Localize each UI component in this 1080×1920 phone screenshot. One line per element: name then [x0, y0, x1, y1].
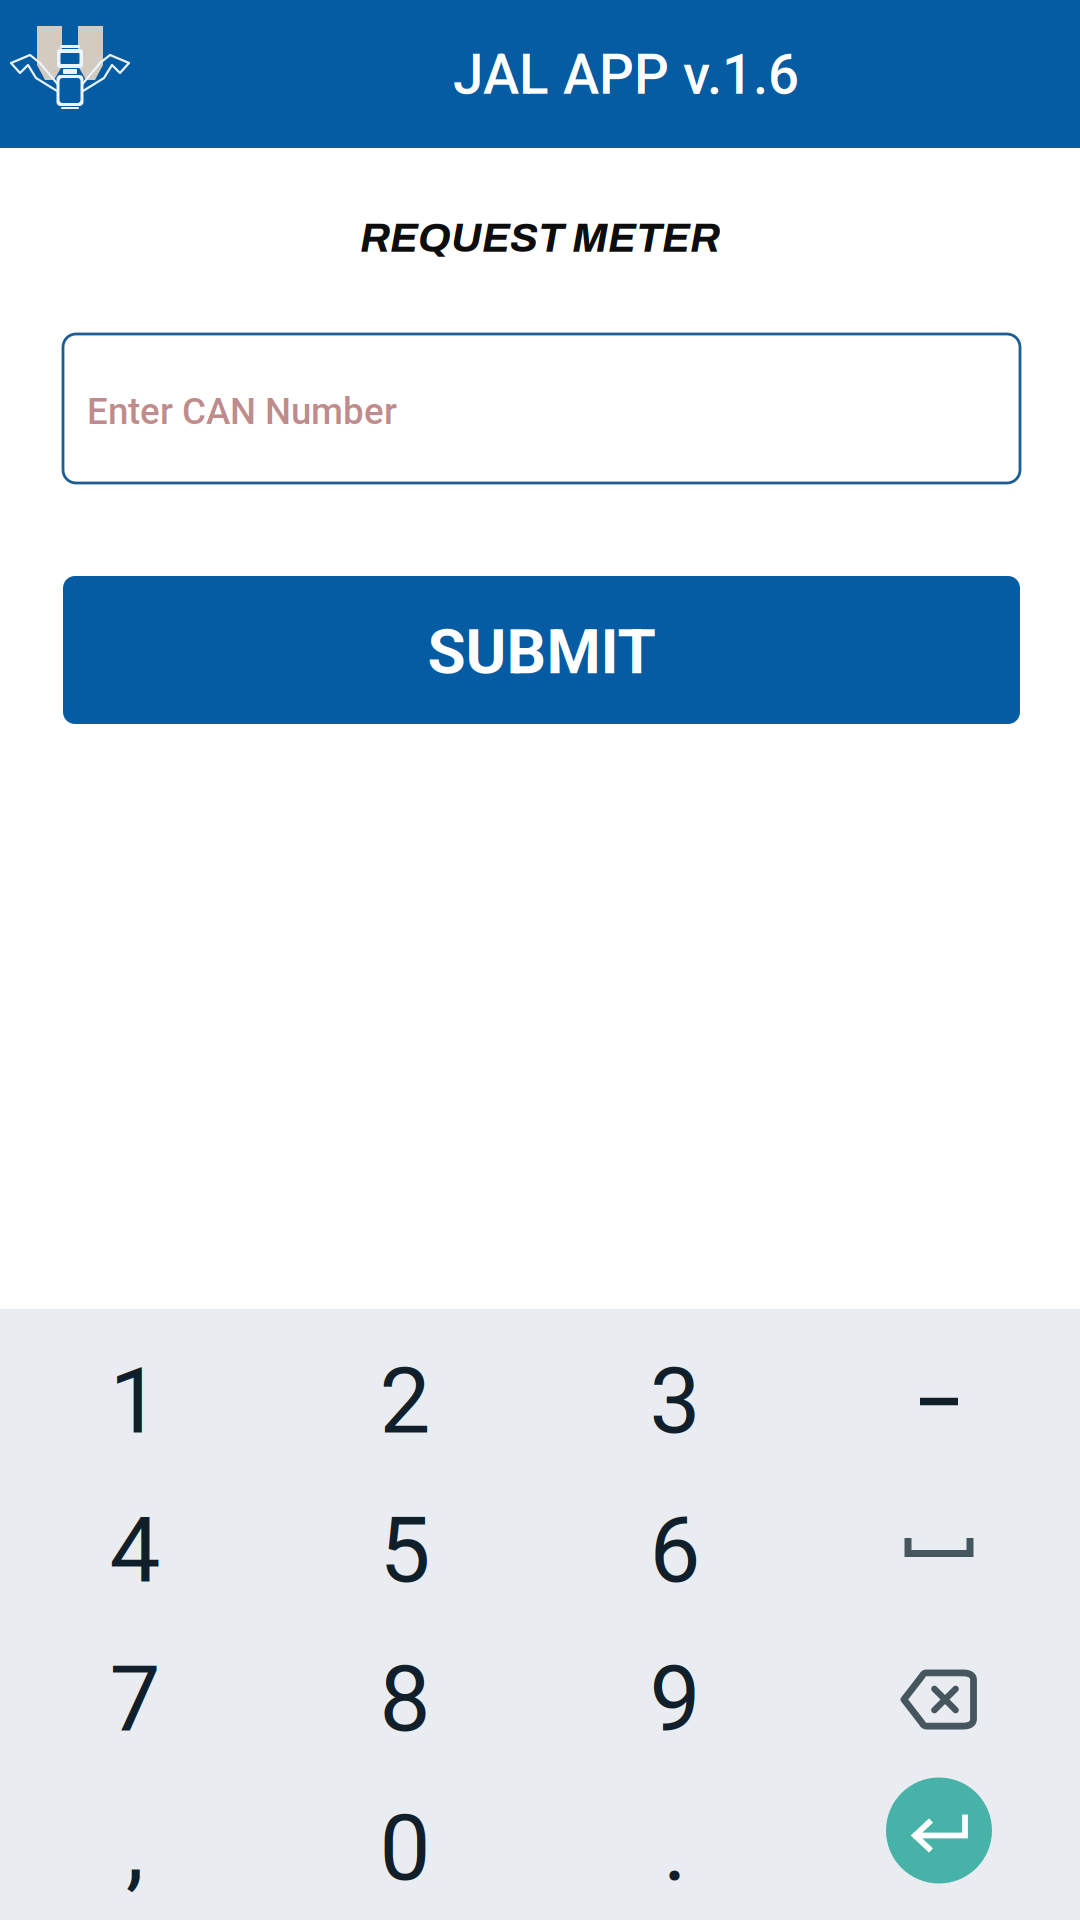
button[interactable]: ,: [0, 1774, 270, 1920]
staticText: .: [663, 1795, 687, 1902]
staticText: 6: [649, 1497, 700, 1604]
button[interactable]: 6: [540, 1476, 810, 1625]
staticText: JAL APP v.1.6: [453, 43, 799, 107]
button[interactable]: Backspace: [810, 1625, 1080, 1774]
button[interactable]: JAL: [0, 0, 150, 148]
staticText: 5: [379, 1497, 430, 1604]
button[interactable]: 5: [270, 1476, 540, 1625]
staticText: REQUEST METER: [360, 215, 720, 260]
staticText: ,: [126, 1795, 144, 1902]
button[interactable]: Minus: [810, 1327, 1080, 1476]
button[interactable]: 8: [270, 1625, 540, 1774]
staticText: 8: [379, 1646, 430, 1753]
button[interactable]: Enter: [810, 1774, 1080, 1920]
staticText: 2: [379, 1348, 430, 1455]
staticText: 0: [379, 1795, 430, 1902]
button[interactable]: 4: [0, 1476, 270, 1625]
button[interactable]: 2: [270, 1327, 540, 1476]
staticText: Enter CAN Number: [87, 390, 397, 433]
staticText: 3: [649, 1348, 700, 1455]
button[interactable]: 0: [270, 1774, 540, 1920]
button[interactable]: 9: [540, 1625, 810, 1774]
button[interactable]: 7: [0, 1625, 270, 1774]
button[interactable]: 3: [540, 1327, 810, 1476]
staticText: 7: [109, 1646, 160, 1753]
button[interactable]: SUBMIT: [63, 576, 1020, 724]
button[interactable]: 1: [0, 1327, 270, 1476]
button[interactable]: Space: [810, 1476, 1080, 1625]
staticText: SUBMIT: [427, 616, 655, 688]
staticText: 1: [109, 1348, 160, 1455]
staticText: 9: [649, 1646, 700, 1753]
staticText: 4: [109, 1497, 160, 1604]
button[interactable]: .: [540, 1774, 810, 1920]
